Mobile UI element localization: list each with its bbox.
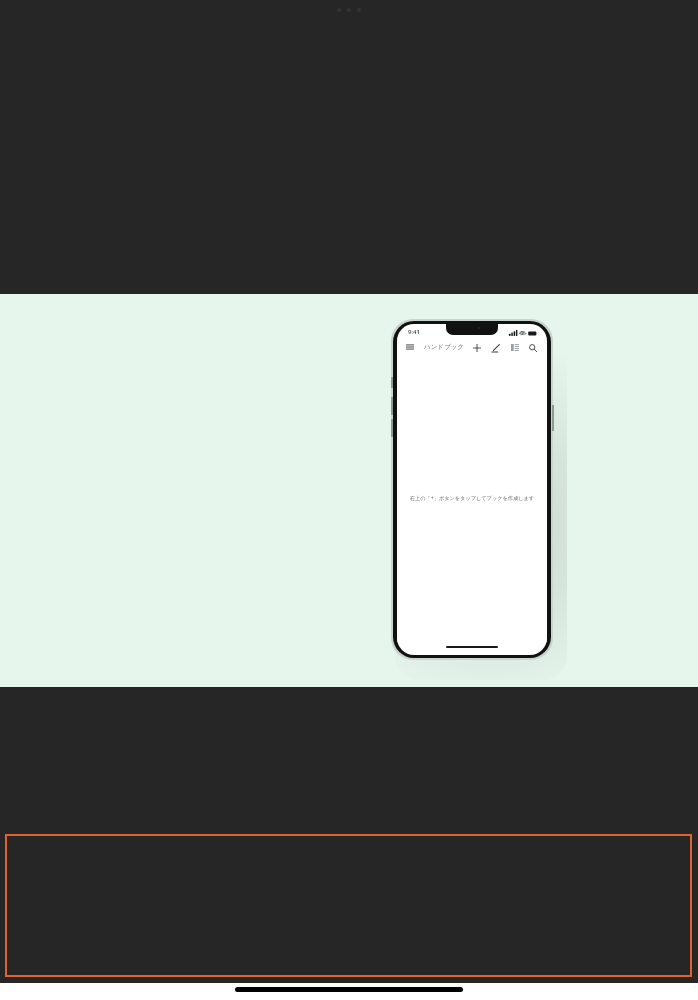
button[interactable]: List view — [508, 341, 521, 354]
staticText: 9:41 — [408, 328, 420, 336]
staticText: ハンドブック — [424, 343, 464, 351]
button[interactable] — [5, 834, 692, 977]
button[interactable]: Menu — [403, 340, 417, 354]
button[interactable]: Edit — [489, 341, 502, 354]
button[interactable]: Add book — [470, 341, 483, 354]
staticText: 右上の「+」ボタンをタップしてブックを作成します — [397, 494, 547, 501]
button[interactable]: Search — [526, 341, 539, 354]
